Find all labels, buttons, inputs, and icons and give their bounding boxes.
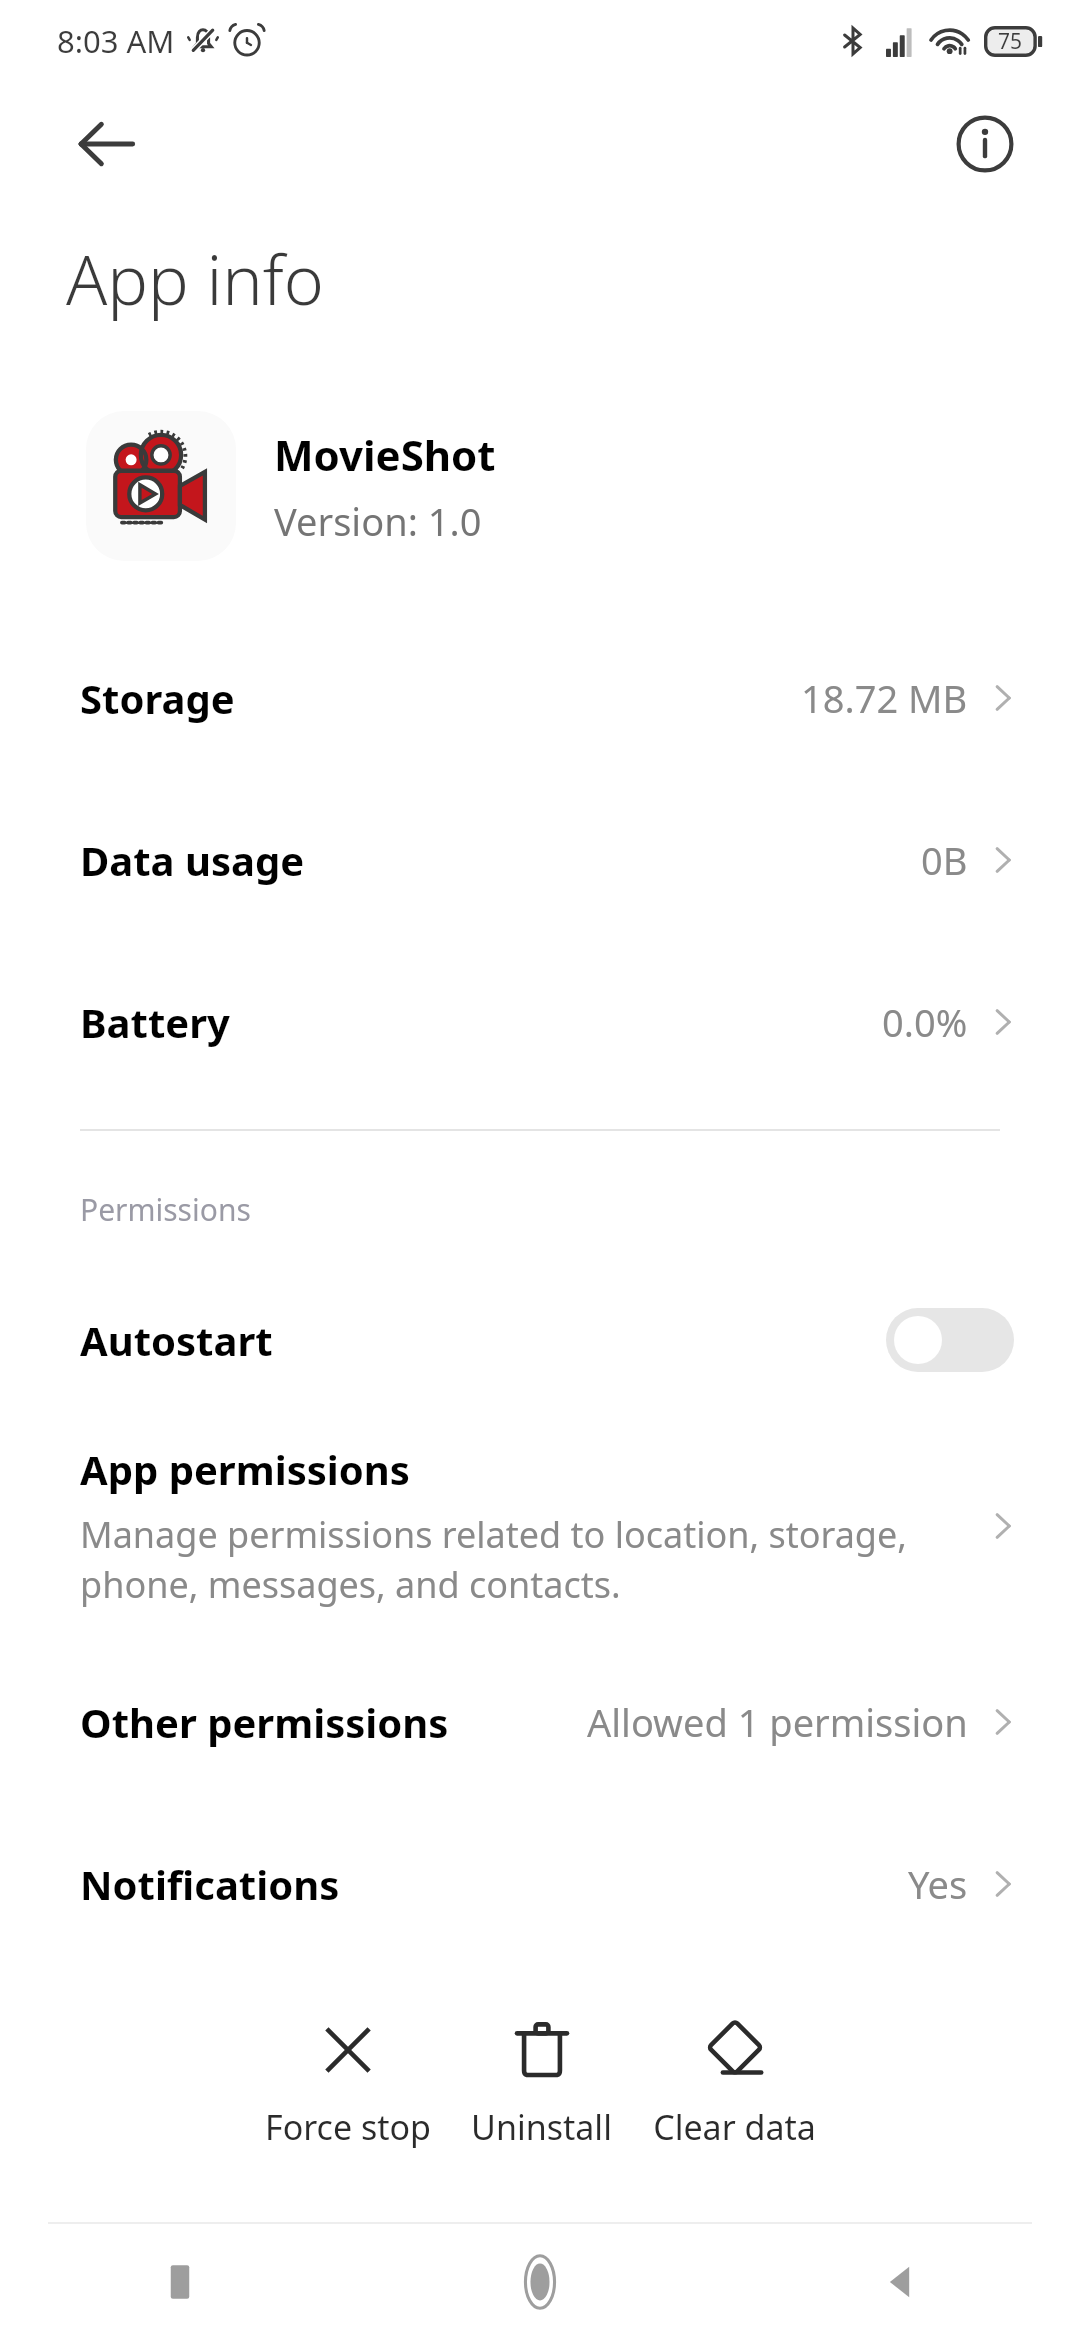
button[interactable]: Uninstall [445, 1988, 638, 2222]
button[interactable]: Recent apps [0, 2224, 360, 2340]
staticText: Battery [80, 995, 230, 1049]
staticText: Data usage [80, 833, 305, 887]
staticText: Version: 1.0 [274, 495, 482, 547]
staticText: App permissions [80, 1442, 410, 1496]
button[interactable]: Battery [0, 941, 1080, 1103]
staticText: Manage permissions related to location, … [80, 1510, 907, 1609]
staticText: Clear data [653, 2104, 816, 2150]
button[interactable]: Force stop [251, 1988, 445, 2222]
button[interactable]: Data usage [0, 779, 1080, 941]
button[interactable]: Autostart [0, 1276, 1080, 1404]
staticText: 8:03 AM [57, 20, 175, 62]
button[interactable]: Home [360, 2224, 720, 2340]
staticText: 18.72 MB [801, 672, 968, 724]
staticText: Allowed 1 permission [587, 1696, 968, 1748]
staticText: Uninstall [471, 2104, 612, 2150]
button[interactable]: App details [930, 89, 1040, 199]
staticText: 0.0% [882, 996, 968, 1048]
staticText: 0B [921, 834, 968, 886]
staticText: 75 [998, 27, 1023, 56]
button[interactable]: Notifications [0, 1803, 1080, 1965]
button[interactable]: Clear data [638, 1988, 831, 2222]
staticText: Storage [80, 671, 235, 725]
staticText: Force stop [265, 2104, 431, 2150]
staticText: Permissions [80, 1189, 251, 1230]
staticText: App info [66, 232, 324, 325]
staticText: MovieShot [274, 426, 496, 483]
staticText: Yes [908, 1858, 968, 1910]
button[interactable]: Other permissions [0, 1641, 1080, 1803]
button[interactable]: App permissions [0, 1442, 1080, 1609]
staticText: Notifications [80, 1857, 340, 1911]
button[interactable]: Storage [0, 617, 1080, 779]
button[interactable]: Back [46, 84, 166, 204]
staticText: Autostart [80, 1313, 273, 1367]
button[interactable]: Back [720, 2224, 1080, 2340]
staticText: Other permissions [80, 1695, 449, 1749]
